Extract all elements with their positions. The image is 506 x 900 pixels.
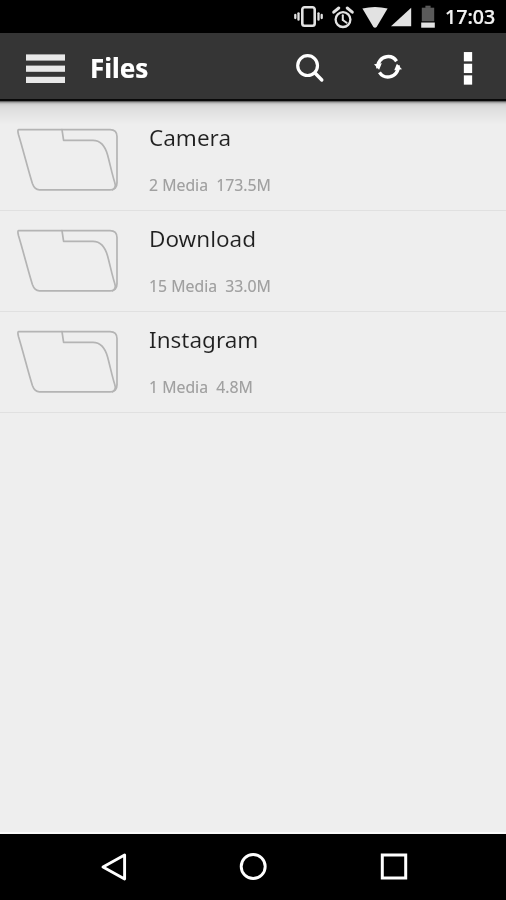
button[interactable]: Back (79, 834, 169, 900)
staticText: 17:03 (445, 3, 496, 30)
button[interactable]: Download (0, 211, 506, 311)
button[interactable]: Camera (0, 110, 506, 210)
button[interactable]: More options (434, 33, 502, 101)
staticText: 15 Media 33.0M (149, 275, 271, 297)
staticText: Camera (149, 122, 232, 153)
button[interactable]: Recent apps (350, 834, 440, 900)
button[interactable]: Search (274, 33, 342, 101)
button[interactable]: Open navigation drawer (6, 42, 85, 92)
staticText: Files (90, 50, 149, 85)
staticText: 2 Media 173.5M (149, 174, 271, 196)
button[interactable]: Refresh (354, 33, 422, 101)
button[interactable]: Instagram (0, 312, 506, 412)
button[interactable]: Home (209, 834, 299, 900)
staticText: Instagram (149, 324, 259, 355)
staticText: 1 Media 4.8M (149, 376, 253, 398)
staticText: Download (149, 223, 257, 254)
